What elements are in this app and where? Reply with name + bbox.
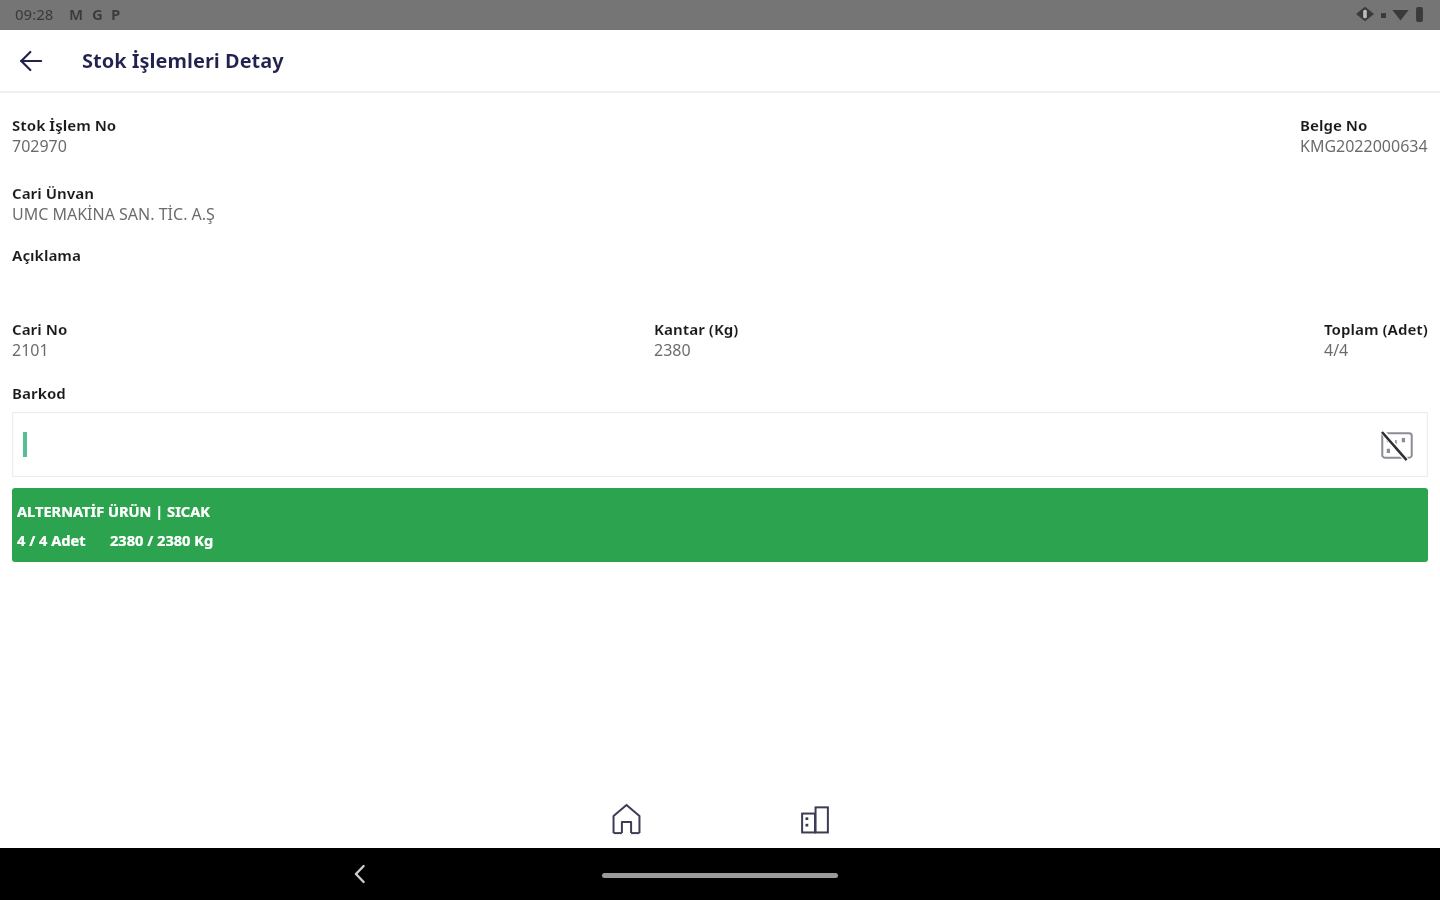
- staticText: Kantar (Kg): [654, 319, 739, 339]
- staticText: 702970: [12, 135, 67, 157]
- button[interactable]: Scan barcode: [1379, 427, 1415, 463]
- staticText: 2101: [12, 339, 49, 361]
- button[interactable]: Back: [7, 37, 55, 85]
- staticText: Stok İşlem No: [12, 115, 117, 135]
- button[interactable]: Home: [602, 873, 838, 878]
- staticText: ALTERNATİF ÜRÜN | SICAK: [17, 501, 210, 521]
- staticText: Stok İşlemleri Detay: [82, 47, 284, 74]
- staticText: Barkod: [12, 383, 66, 403]
- staticText: 2380 / 2380 Kg: [110, 530, 214, 550]
- button[interactable]: Scan barcode: [12, 412, 1428, 477]
- staticText: 2380: [654, 339, 691, 361]
- staticText: 09:28: [15, 4, 54, 24]
- staticText: 4/4: [1324, 339, 1349, 361]
- staticText: G: [92, 4, 103, 24]
- staticText: Cari Ünvan: [12, 183, 95, 203]
- staticText: Belge No: [1300, 115, 1368, 135]
- staticText: Cari No: [12, 319, 68, 339]
- staticText: 4 / 4 Adet: [17, 530, 86, 550]
- staticText: Açıklama: [12, 245, 81, 265]
- staticText: UMC MAKİNA SAN. TİC. A.Ş: [12, 203, 215, 225]
- button[interactable]: Back: [344, 858, 376, 890]
- button[interactable]: Warehouse: [787, 791, 843, 847]
- staticText: P: [111, 4, 121, 24]
- staticText: Toplam (Adet): [1324, 319, 1428, 339]
- staticText: M: [69, 4, 84, 24]
- button[interactable]: ALTERNATİF ÜRÜN | SICAK: [12, 488, 1428, 562]
- staticText: KMG2022000634: [1300, 135, 1428, 157]
- button[interactable]: Home: [598, 791, 654, 847]
